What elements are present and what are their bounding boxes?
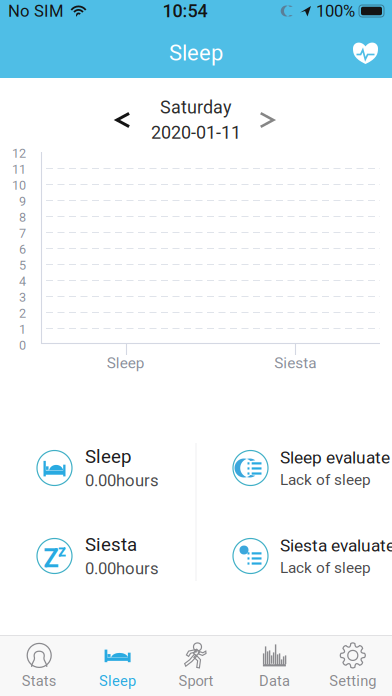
staticText: z	[58, 542, 66, 560]
staticText: Sport	[178, 672, 213, 690]
staticText: 8	[19, 210, 26, 225]
staticText: 3	[19, 290, 26, 305]
staticText: No SIM	[8, 1, 64, 21]
staticText: 7	[19, 226, 26, 241]
staticText: 11	[12, 162, 26, 177]
button[interactable]: Stats	[0, 636, 78, 695]
staticText: Siesta	[85, 534, 137, 556]
staticText: 4	[19, 274, 26, 289]
staticText: Stats	[22, 672, 57, 690]
staticText: Siesta	[274, 354, 316, 372]
staticText: 0.00hours	[85, 471, 159, 490]
staticText: 1	[19, 322, 26, 337]
staticText: Saturday	[160, 97, 232, 118]
button[interactable]: Heart rate	[337, 28, 392, 72]
button[interactable]: Z	[0, 534, 196, 578]
staticText: 0.00hours	[85, 559, 159, 578]
button[interactable]: Sleep	[78, 636, 157, 695]
staticText: 12	[12, 146, 26, 161]
staticText: Sleep	[169, 40, 223, 66]
staticText: 100%	[316, 1, 355, 21]
staticText: 6	[19, 242, 26, 257]
button[interactable]: Data	[235, 636, 314, 695]
staticText: 5	[19, 258, 26, 273]
staticText: Data	[259, 672, 290, 690]
staticText: 9	[19, 194, 26, 209]
staticText: 10:54	[162, 0, 207, 22]
staticText: Lack of sleep	[280, 559, 371, 577]
staticText: Sleep evaluate	[280, 447, 390, 468]
staticText: 2	[19, 306, 26, 321]
button[interactable]: Setting	[314, 636, 392, 695]
button[interactable]: Previous day	[101, 97, 145, 142]
staticText: 2020-01-11	[151, 122, 241, 143]
button[interactable]: Sport	[157, 636, 235, 695]
button[interactable]: Sleep	[0, 446, 196, 490]
staticText: 0	[19, 338, 26, 353]
staticText: 10	[12, 178, 26, 193]
staticText: Sleep	[99, 672, 136, 690]
button[interactable]: Siesta evaluate	[196, 535, 392, 577]
staticText: Lack of sleep	[280, 471, 371, 489]
button[interactable]: Sleep evaluate	[196, 447, 392, 489]
staticText: Setting	[329, 672, 376, 690]
staticText: Siesta evaluate	[280, 535, 392, 556]
staticText: Sleep	[107, 354, 145, 372]
button[interactable]: Next day	[245, 97, 289, 142]
staticText: Z	[43, 544, 58, 573]
staticText: Sleep	[85, 446, 131, 468]
